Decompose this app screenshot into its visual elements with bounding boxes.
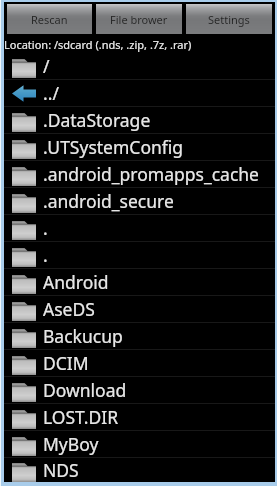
staticText: Rescan	[31, 12, 68, 27]
button[interactable]: DCIM	[4, 350, 275, 376]
button[interactable]: Android	[4, 269, 275, 295]
button[interactable]: Backucup	[4, 323, 275, 349]
button[interactable]: AseDS	[4, 296, 275, 322]
staticText: ../	[43, 81, 59, 105]
button[interactable]: LOST.DIR	[4, 404, 275, 430]
staticText: .	[43, 243, 48, 267]
button[interactable]: MyBoy	[4, 431, 275, 457]
button[interactable]: File brower	[96, 4, 182, 34]
staticText: Location: /sdcard (.nds, .zip, .7z, .rar…	[4, 37, 275, 52]
staticText: MyBoy	[43, 432, 99, 456]
staticText: DCIM	[43, 351, 89, 375]
button[interactable]: /	[4, 53, 275, 79]
button[interactable]: .android_secure	[4, 188, 275, 214]
staticText: .android_promapps_cache	[43, 162, 259, 186]
button[interactable]: .	[4, 242, 275, 268]
staticText: LOST.DIR	[43, 405, 119, 429]
staticText: .DataStorage	[43, 108, 151, 132]
button[interactable]: .	[4, 215, 275, 241]
staticText: .	[43, 216, 48, 240]
button[interactable]: ../	[4, 80, 275, 106]
staticText: /	[43, 54, 50, 78]
button[interactable]: .android_promapps_cache	[4, 161, 275, 187]
button[interactable]: NDS	[4, 458, 275, 482]
staticText: File brower	[110, 12, 168, 27]
button[interactable]: Rescan	[7, 4, 92, 34]
staticText: Backucup	[43, 324, 123, 348]
staticText: .android_secure	[43, 189, 174, 213]
staticText: AseDS	[43, 297, 95, 321]
staticText: Download	[43, 378, 127, 402]
staticText: Android	[43, 270, 109, 294]
button[interactable]: Download	[4, 377, 275, 403]
staticText: Settings	[208, 12, 250, 27]
button[interactable]: Settings	[186, 4, 272, 34]
button[interactable]: .DataStorage	[4, 107, 275, 133]
staticText: NDS	[43, 458, 79, 482]
button[interactable]: .UTSystemConfig	[4, 134, 275, 160]
staticText: .UTSystemConfig	[43, 135, 184, 159]
